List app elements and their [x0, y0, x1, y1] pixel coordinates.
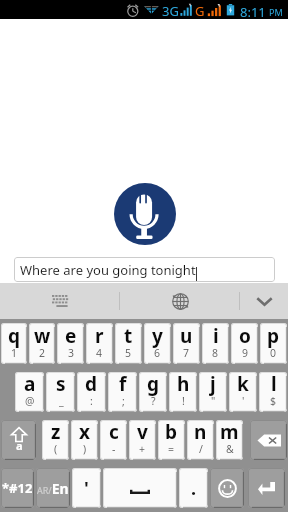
staticText: 0: [270, 346, 277, 360]
staticText: n: [194, 420, 207, 445]
staticText: 8:11: [240, 3, 266, 21]
staticText: j: [210, 372, 216, 397]
button[interactable]: v: [129, 420, 156, 460]
staticText: b: [165, 420, 178, 445]
button[interactable]: a: [15, 372, 44, 412]
staticText: _: [59, 394, 64, 408]
staticText: h: [177, 372, 190, 397]
staticText: o: [239, 323, 251, 349]
staticText: q: [8, 323, 21, 349]
staticText: u: [180, 323, 193, 349]
button[interactable]: *#12: [1, 468, 34, 508]
button[interactable]: AR/En: [36, 468, 70, 508]
staticText: G: [195, 2, 205, 20]
button[interactable]: .: [179, 468, 208, 508]
button[interactable]: t: [115, 323, 142, 364]
staticText: $: [270, 394, 277, 408]
staticText: e: [65, 323, 77, 349]
staticText: 8: [212, 346, 219, 360]
button[interactable]: m: [216, 420, 243, 460]
staticText: v: [137, 420, 148, 445]
button[interactable]: q: [1, 323, 27, 364]
staticText: i: [213, 323, 219, 349]
staticText: d: [85, 372, 98, 397]
staticText: s: [56, 372, 66, 397]
staticText: c: [109, 420, 119, 445]
staticText: Where are you going tonight: [20, 261, 196, 279]
staticText: (: [54, 442, 58, 456]
staticText: /: [199, 442, 203, 456]
staticText: p: [267, 323, 280, 349]
staticText: =: [168, 442, 175, 456]
staticText: y: [152, 323, 163, 349]
staticText: ": [211, 394, 216, 408]
staticText: r: [95, 323, 104, 349]
button[interactable]: z: [42, 420, 69, 460]
staticText: &: [226, 442, 234, 456]
staticText: ': [84, 476, 89, 501]
button[interactable]: Where are you going tonight: [14, 257, 275, 282]
staticText: !: [182, 394, 185, 408]
staticText: -: [112, 442, 116, 456]
button[interactable]: o: [231, 323, 258, 364]
button[interactable]: r: [86, 323, 113, 364]
staticText: 5: [125, 346, 132, 360]
button[interactable]: w: [29, 323, 55, 364]
button[interactable]: h: [169, 372, 197, 412]
button[interactable]: e: [57, 323, 84, 364]
button[interactable]: i: [202, 323, 229, 364]
button[interactable]: c: [100, 420, 127, 460]
button[interactable]: Change language: [120, 283, 239, 319]
button[interactable]: k: [229, 372, 257, 412]
button[interactable]: b: [158, 420, 185, 460]
button[interactable]: x: [71, 420, 98, 460]
button[interactable]: d: [77, 372, 106, 412]
button[interactable]: l: [259, 372, 287, 412]
staticText: .: [191, 476, 197, 501]
staticText: @: [25, 394, 35, 408]
staticText: x: [79, 420, 90, 445]
button[interactable]: Keyboard settings: [0, 283, 119, 319]
staticText: 4: [96, 346, 103, 360]
staticText: ': [242, 394, 245, 408]
staticText: 3: [68, 346, 75, 360]
staticText: a: [24, 372, 36, 397]
staticText: k: [237, 372, 249, 397]
staticText: 1: [11, 346, 18, 360]
staticText: +: [139, 442, 146, 456]
staticText: ;: [122, 394, 125, 408]
button[interactable]: y: [144, 323, 171, 364]
button[interactable]: Voice input: [114, 183, 176, 245]
staticText: g: [147, 372, 160, 397]
button[interactable]: Hide keyboard: [240, 283, 288, 319]
staticText: f: [119, 372, 127, 397]
staticText: 2: [39, 346, 46, 360]
staticText: z: [51, 420, 61, 445]
staticText: *#12: [2, 479, 33, 497]
button[interactable]: f: [108, 372, 137, 412]
staticText: a: [16, 438, 23, 453]
staticText: ?: [151, 394, 156, 408]
staticText: AR/En: [37, 479, 69, 498]
staticText: ): [83, 442, 87, 456]
staticText: 9: [242, 346, 249, 360]
button[interactable]: u: [173, 323, 200, 364]
staticText: w: [34, 323, 51, 349]
button[interactable]: enter: [248, 468, 285, 508]
staticText: t: [124, 323, 133, 349]
button[interactable]: j: [199, 372, 227, 412]
button[interactable]: g: [139, 372, 167, 412]
staticText: PM: [269, 6, 283, 18]
staticText: l: [271, 372, 277, 397]
staticText: :: [90, 394, 93, 408]
button[interactable]: n: [187, 420, 214, 460]
button[interactable]: ': [72, 468, 101, 508]
button[interactable]: space: [103, 468, 177, 508]
button[interactable]: p: [260, 323, 287, 364]
button[interactable]: back: [250, 420, 287, 460]
button[interactable]: s: [46, 372, 75, 412]
button[interactable]: shift: [1, 420, 36, 460]
staticText: m: [220, 420, 239, 445]
button[interactable]: emoji: [210, 468, 244, 508]
staticText: 6: [154, 346, 161, 360]
